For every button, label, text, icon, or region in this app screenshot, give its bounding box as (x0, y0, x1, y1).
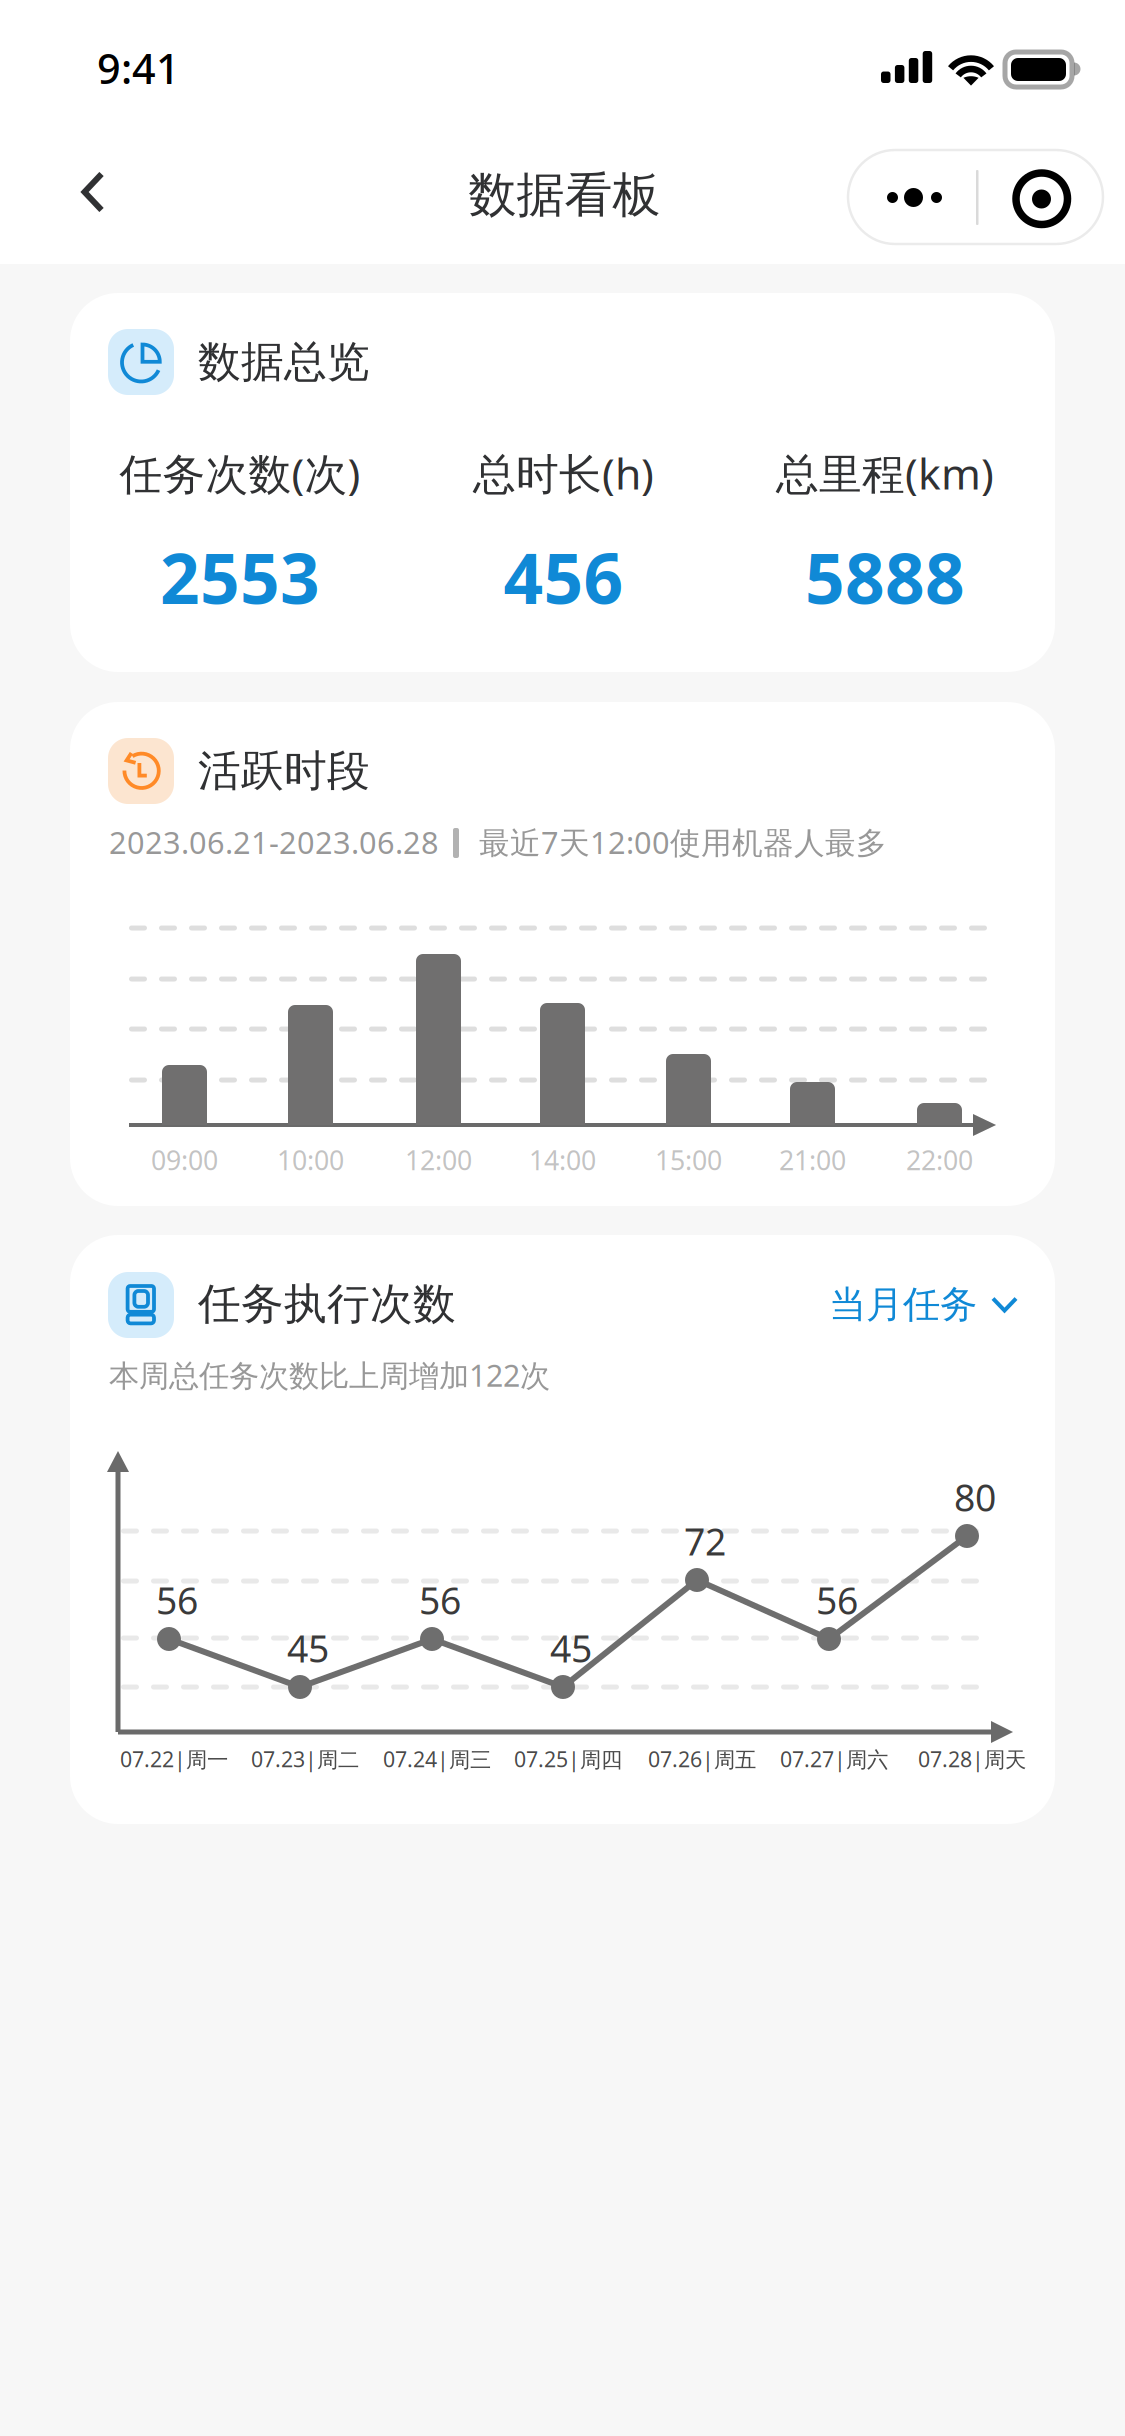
staticText: 总时长(h) (473, 444, 654, 502)
staticText: 07.27|周六 (780, 1744, 888, 1774)
staticText: 09:00 (151, 1142, 218, 1178)
staticText: 任务执行次数 (198, 1277, 456, 1331)
staticText: 14:00 (529, 1142, 596, 1178)
staticText: 56 (156, 1575, 198, 1625)
staticText: 56 (419, 1575, 461, 1625)
staticText: 07.23|周二 (251, 1744, 359, 1774)
staticText: 72 (684, 1516, 726, 1566)
button[interactable]: Back (48, 148, 138, 236)
staticText: 56 (816, 1575, 858, 1625)
staticText: 总里程(km) (776, 444, 994, 502)
staticText: 15:00 (655, 1142, 722, 1178)
staticText: 12:00 (405, 1142, 472, 1178)
staticText: 当月任务 (829, 1281, 977, 1328)
staticText: 2023.06.21-2023.06.28 (109, 821, 439, 863)
staticText: 2553 (160, 530, 320, 624)
staticText: 07.22|周一 (120, 1744, 228, 1774)
staticText: 456 (503, 530, 623, 624)
staticText: 21:00 (779, 1142, 846, 1178)
staticText: 80 (954, 1472, 996, 1522)
staticText: 本周总任务次数比上周增加122次 (109, 1354, 550, 1396)
staticText: 22:00 (906, 1142, 973, 1178)
staticText: 07.25|周四 (514, 1744, 622, 1774)
staticText: 07.24|周三 (383, 1744, 491, 1774)
staticText: 07.28|周天 (918, 1744, 1026, 1774)
staticText: 9:41 (97, 40, 180, 96)
button[interactable]: More options (848, 150, 1103, 244)
staticText: 活跃时段 (198, 744, 370, 798)
staticText: 数据总览 (198, 335, 370, 389)
staticText: 数据看板 (468, 165, 660, 225)
staticText: 45 (550, 1623, 592, 1673)
staticText: 45 (287, 1623, 329, 1673)
staticText: 10:00 (277, 1142, 344, 1178)
staticText: 5888 (805, 530, 965, 624)
button[interactable]: 当月任务 (819, 1267, 1028, 1342)
staticText: 任务次数(次) (119, 444, 360, 502)
staticText: 最近7天12:00使用机器人最多 (479, 821, 887, 863)
staticText: 07.26|周五 (648, 1744, 756, 1774)
